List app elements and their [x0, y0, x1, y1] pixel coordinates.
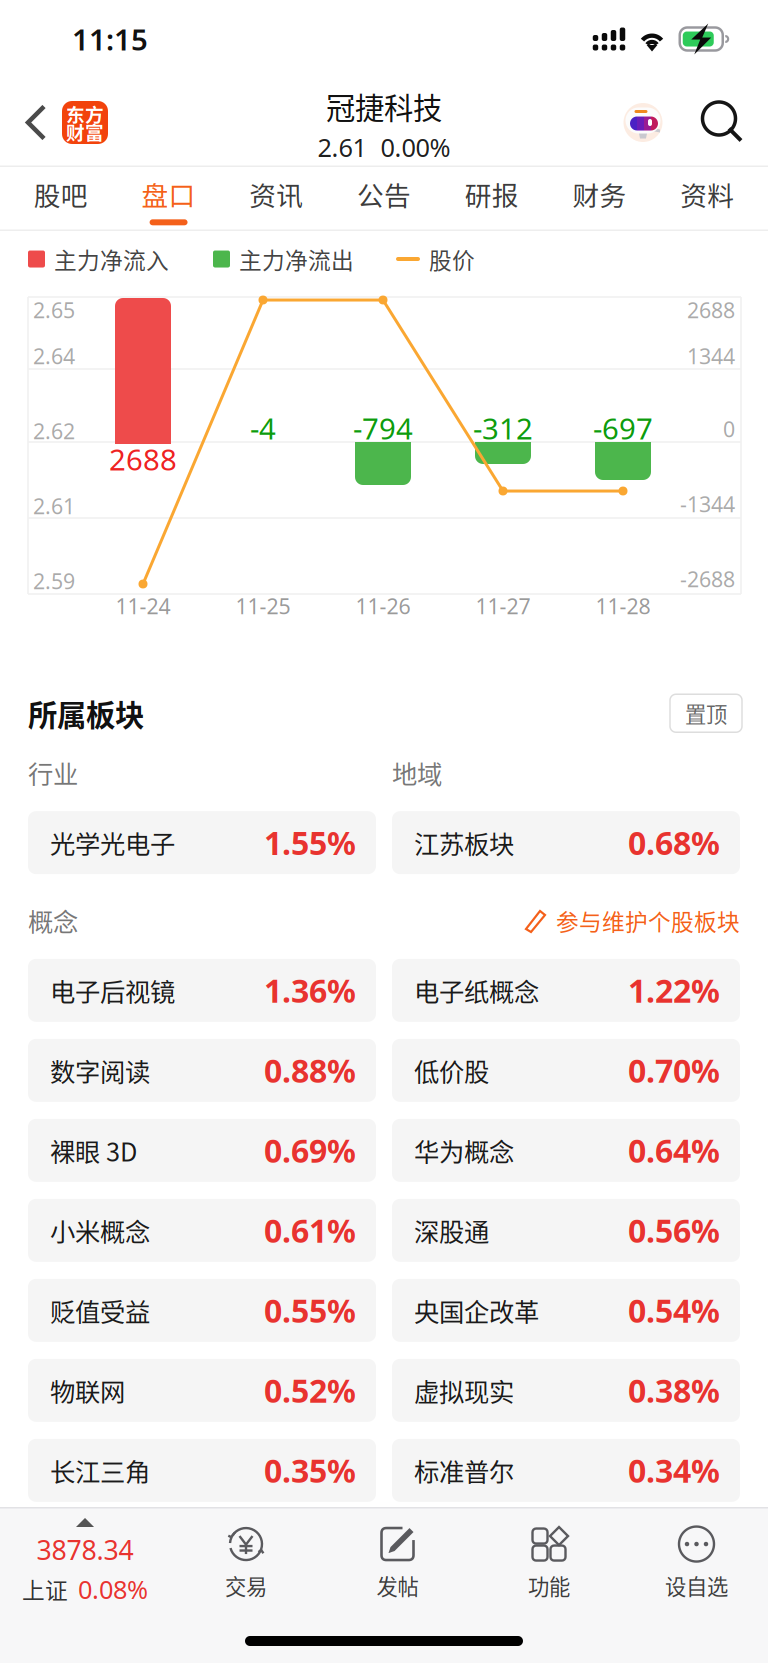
staticText: 地域 — [392, 754, 442, 791]
staticText: 2.64 — [33, 342, 75, 370]
staticText: 公告 — [357, 175, 411, 213]
button[interactable]: 低价股 — [392, 1039, 740, 1102]
staticText: 设自选 — [665, 1570, 728, 1601]
button[interactable]: Search — [692, 99, 768, 145]
staticText: 研报 — [465, 175, 519, 213]
staticText: 冠捷科技 — [326, 85, 442, 127]
button[interactable]: 裸眼 3D — [28, 1119, 376, 1182]
button[interactable]: 电子后视镜 — [28, 959, 376, 1022]
staticText: -4 — [250, 408, 276, 447]
staticText: 贬值受益 — [50, 1292, 150, 1329]
button[interactable]: 资料 — [653, 167, 761, 231]
staticText: 11-28 — [595, 592, 650, 620]
staticText: 0.70% — [628, 1049, 720, 1092]
staticText: 1.55% — [264, 821, 356, 864]
staticText: 东方 — [66, 100, 104, 127]
button[interactable]: Back — [0, 78, 62, 167]
staticText: 光学光电子 — [50, 824, 175, 861]
staticText: -697 — [593, 408, 653, 447]
staticText: 2.61 0.00% — [317, 130, 450, 164]
staticText: 0.34% — [628, 1449, 720, 1492]
button[interactable]: 交易 — [170, 1523, 322, 1601]
staticText: 虚拟现实 — [414, 1372, 514, 1409]
staticText: 2.61 — [33, 492, 75, 520]
button[interactable]: 虚拟现实 — [392, 1359, 740, 1422]
staticText: 0.69% — [264, 1129, 356, 1172]
button[interactable]: 电子纸概念 — [392, 959, 740, 1022]
staticText: 股吧 — [34, 175, 88, 213]
button[interactable]: 物联网 — [28, 1359, 376, 1422]
staticText: 0.88% — [264, 1049, 356, 1092]
staticText: 0.61% — [264, 1209, 356, 1252]
staticText: 0.68% — [628, 821, 720, 864]
button[interactable]: 小米概念 — [28, 1199, 376, 1262]
button[interactable]: AI assistant — [614, 93, 672, 151]
button[interactable]: 功能 — [473, 1523, 625, 1601]
staticText: 小米概念 — [50, 1212, 150, 1249]
button[interactable]: 数字阅读 — [28, 1039, 376, 1102]
staticText: 1.36% — [264, 969, 356, 1012]
button[interactable]: 参与维护个股板块 — [523, 904, 740, 937]
staticText: 2.62 — [33, 417, 75, 445]
button[interactable]: 置顶 — [670, 694, 742, 732]
staticText: 11-25 — [235, 592, 290, 620]
staticText: 深股通 — [414, 1212, 489, 1249]
staticText: 0.38% — [628, 1369, 720, 1412]
staticText: 低价股 — [414, 1052, 489, 1089]
button[interactable]: 江苏板块 — [392, 811, 740, 874]
button[interactable]: 央国企改革 — [392, 1279, 740, 1342]
staticText: 11-24 — [115, 592, 170, 620]
staticText: 1.22% — [628, 969, 720, 1012]
staticText: 主力净流出 — [239, 243, 354, 275]
staticText: 概念 — [28, 902, 78, 939]
staticText: -1344 — [680, 490, 735, 518]
button[interactable]: 财务 — [546, 167, 653, 231]
button[interactable]: 标准普尔 — [392, 1439, 740, 1502]
staticText: 0.56% — [628, 1209, 720, 1252]
staticText: 上证 — [22, 1573, 68, 1606]
staticText: 标准普尔 — [414, 1452, 514, 1489]
staticText: 长江三角 — [50, 1452, 150, 1489]
staticText: 0.54% — [628, 1289, 720, 1332]
button[interactable]: 上证指数 3878.34 — [0, 1518, 170, 1606]
staticText: 央国企改革 — [414, 1292, 539, 1329]
staticText: 股价 — [429, 243, 475, 275]
button[interactable]: 东方财富 — [62, 101, 108, 144]
button[interactable]: 贬值受益 — [28, 1279, 376, 1342]
staticText: 资讯 — [249, 175, 303, 213]
button[interactable]: 盘口 — [115, 167, 222, 231]
staticText: 所属板块 — [28, 692, 144, 734]
button[interactable]: 股吧 — [7, 167, 115, 231]
staticText: 华为概念 — [414, 1132, 514, 1169]
staticText: 主力净流入 — [54, 243, 169, 275]
button[interactable]: 设自选 — [625, 1523, 768, 1601]
button[interactable]: 华为概念 — [392, 1119, 740, 1182]
staticText: 参与维护个股板块 — [556, 904, 740, 937]
staticText: 资料 — [680, 175, 734, 213]
button[interactable]: 研报 — [438, 167, 546, 231]
staticText: 3878.34 — [36, 1532, 133, 1567]
button[interactable]: 光学光电子 — [28, 811, 376, 874]
button[interactable]: 公告 — [330, 167, 438, 231]
button[interactable]: 资讯 — [222, 167, 330, 231]
staticText: -312 — [473, 408, 533, 447]
button[interactable]: 长江三角 — [28, 1439, 376, 1502]
staticText: -2688 — [680, 565, 735, 593]
staticText: 0.55% — [264, 1289, 356, 1332]
staticText: 盘口 — [142, 175, 196, 213]
staticText: 功能 — [528, 1570, 570, 1601]
staticText: 2.59 — [33, 567, 75, 595]
staticText: 行业 — [28, 754, 78, 791]
staticText: 0.08% — [78, 1572, 148, 1606]
button[interactable]: 发帖 — [322, 1523, 473, 1601]
staticText: 江苏板块 — [414, 824, 514, 861]
staticText: 1344 — [687, 342, 735, 370]
staticText: 2688 — [687, 296, 735, 324]
button[interactable]: 深股通 — [392, 1199, 740, 1262]
staticText: 交易 — [225, 1570, 267, 1601]
staticText: 置顶 — [685, 698, 727, 729]
staticText: 11:15 — [72, 19, 148, 58]
staticText: 0.35% — [264, 1449, 356, 1492]
staticText: 2688 — [109, 439, 177, 478]
staticText: 发帖 — [376, 1570, 418, 1601]
